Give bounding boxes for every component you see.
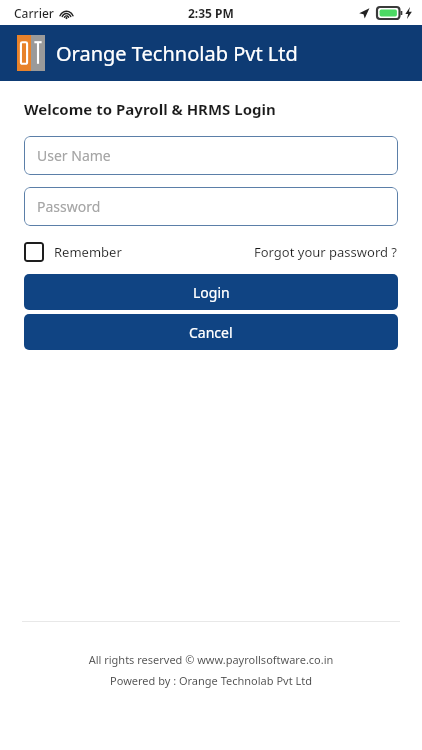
- staticText: Login: [193, 283, 230, 302]
- staticText: Powered by : Orange Technolab Pvt Ltd: [0, 673, 422, 688]
- staticText: User Name: [37, 146, 111, 165]
- staticText: 2:35 PM: [188, 5, 234, 21]
- staticText: Password: [37, 197, 101, 216]
- staticText: Orange Technolab Pvt Ltd: [56, 40, 298, 67]
- staticText: Carrier: [14, 5, 54, 21]
- button[interactable]: Forgot your password ?: [254, 243, 398, 261]
- staticText: Welcome to Payroll & HRMS Login: [24, 99, 276, 119]
- button[interactable]: Cancel: [24, 314, 398, 350]
- staticText: All rights reserved © www.payrollsoftwar…: [0, 652, 422, 667]
- staticText: Cancel: [189, 323, 233, 342]
- staticText: Remember: [54, 243, 122, 261]
- button[interactable]: Login: [24, 274, 398, 310]
- button[interactable]: User Name: [24, 136, 398, 175]
- button[interactable]: Password: [24, 187, 398, 226]
- button[interactable]: Remember: [24, 242, 122, 262]
